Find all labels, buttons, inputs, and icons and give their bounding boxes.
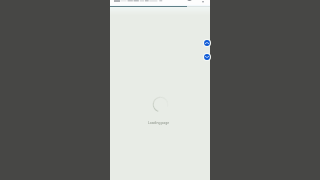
button[interactable]: More options: [201, 0, 205, 3]
button[interactable]: Scroll to bottom: [203, 53, 211, 61]
button[interactable]: Scroll to top: [203, 39, 211, 47]
staticText: Loading page: [143, 120, 174, 124]
button[interactable]: Reload: [187, 0, 192, 1]
